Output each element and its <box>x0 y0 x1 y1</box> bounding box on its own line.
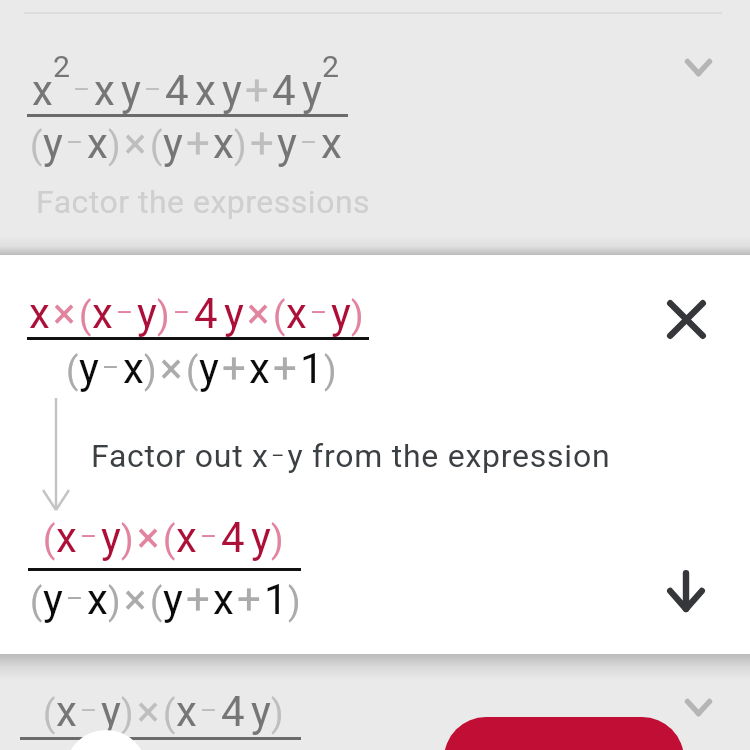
staticText: ) <box>324 350 337 392</box>
staticText: ( <box>30 125 43 167</box>
button[interactable]: Next step <box>654 559 718 623</box>
staticText: y <box>251 513 271 562</box>
staticText: x <box>123 344 144 393</box>
staticText: + <box>245 66 269 115</box>
staticText: – <box>144 74 162 104</box>
staticText: ( <box>150 125 163 167</box>
staticText: ( <box>79 295 92 337</box>
staticText: 4 <box>194 289 218 338</box>
staticText: y <box>79 344 99 393</box>
staticText: x <box>213 575 234 624</box>
staticText: – <box>66 127 84 157</box>
staticText: x <box>29 289 50 338</box>
staticText: x <box>286 289 307 338</box>
staticText: × <box>247 289 270 338</box>
staticText: y <box>43 119 63 168</box>
staticText: y <box>302 66 322 115</box>
staticText: – <box>80 521 98 551</box>
staticText: 4 <box>165 66 189 115</box>
staticText: ) <box>271 519 284 561</box>
button[interactable]: Scan problem <box>444 717 684 750</box>
staticText: x <box>87 575 108 624</box>
staticText: ) <box>157 295 170 337</box>
staticText: × <box>137 687 160 736</box>
staticText: – <box>310 297 328 327</box>
button[interactable]: Expand step <box>672 41 724 93</box>
staticText: x <box>92 289 113 338</box>
staticText: + <box>222 344 246 393</box>
staticText: 2 <box>53 49 70 84</box>
staticText: y <box>121 66 141 115</box>
staticText: × <box>160 344 183 393</box>
staticText: y <box>277 119 297 168</box>
button[interactable]: Expand step <box>672 681 724 733</box>
staticText: y <box>101 687 121 736</box>
staticText: ) <box>108 125 121 167</box>
button[interactable]: Close step <box>654 287 718 351</box>
staticText: – <box>80 695 98 725</box>
staticText: 1 <box>300 344 324 393</box>
staticText: x <box>87 119 108 168</box>
staticText: x <box>249 344 270 393</box>
staticText: ( <box>66 350 79 392</box>
staticText: x <box>213 119 234 168</box>
staticText: ) <box>121 693 134 735</box>
staticText: x <box>176 513 197 562</box>
staticText: ( <box>43 519 56 561</box>
staticText: x <box>32 66 53 115</box>
staticText: 4 <box>221 687 245 736</box>
staticText: x <box>56 513 77 562</box>
staticText: + <box>273 344 297 393</box>
staticText: ) <box>288 581 301 623</box>
staticText: + <box>186 575 210 624</box>
staticText: ( <box>163 693 176 735</box>
staticText: – <box>200 521 218 551</box>
staticText: ( <box>43 693 56 735</box>
staticText: y <box>331 289 351 338</box>
staticText: ) <box>234 125 247 167</box>
staticText: ) <box>108 581 121 623</box>
staticText: y <box>43 575 63 624</box>
staticText: ) <box>121 519 134 561</box>
staticText: Factor out x – y from the expression <box>91 437 611 475</box>
staticText: ( <box>273 295 286 337</box>
staticText: × <box>124 119 147 168</box>
staticText: 2 <box>322 49 339 84</box>
staticText: 1 <box>264 575 288 624</box>
staticText: y <box>222 66 242 115</box>
staticText: Factor the expressions <box>36 183 371 221</box>
staticText: – <box>116 297 134 327</box>
staticText: – <box>200 695 218 725</box>
staticText: y <box>101 513 121 562</box>
staticText: y <box>251 687 271 736</box>
staticText: x <box>176 687 197 736</box>
staticText: + <box>237 575 261 624</box>
staticText: y <box>137 289 157 338</box>
staticText: ) <box>271 693 284 735</box>
staticText: × <box>124 575 147 624</box>
staticText: y <box>224 289 244 338</box>
staticText: ( <box>163 519 176 561</box>
staticText: x <box>94 66 115 115</box>
staticText: + <box>186 119 210 168</box>
staticText: x <box>56 687 77 736</box>
staticText: y <box>163 575 183 624</box>
staticText: ) <box>144 350 157 392</box>
staticText: – <box>300 127 318 157</box>
staticText: × <box>53 289 76 338</box>
staticText: x <box>321 119 342 168</box>
staticText: y <box>199 344 219 393</box>
staticText: – <box>173 297 191 327</box>
staticText: + <box>250 119 274 168</box>
staticText: × <box>137 513 160 562</box>
staticText: – <box>73 74 91 104</box>
staticText: ) <box>351 295 364 337</box>
staticText: ( <box>30 581 43 623</box>
staticText: x <box>195 66 216 115</box>
staticText: 4 <box>221 513 245 562</box>
staticText: ( <box>150 581 163 623</box>
staticText: 4 <box>272 66 296 115</box>
staticText: ( <box>186 350 199 392</box>
staticText: – <box>66 583 84 613</box>
staticText: – <box>102 352 120 382</box>
